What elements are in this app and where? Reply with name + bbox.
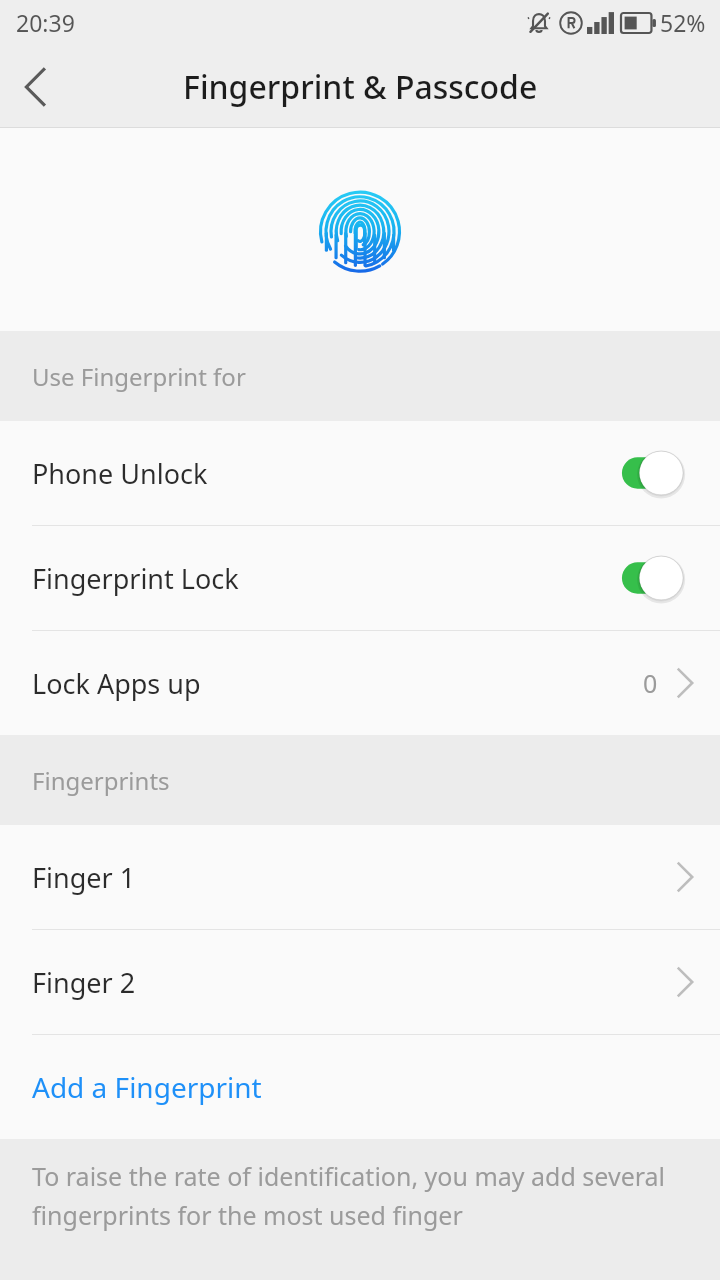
staticText: 52%	[660, 7, 706, 38]
staticText: Fingerprint Lock	[32, 560, 588, 597]
staticText: Phone Unlock	[32, 455, 588, 492]
button[interactable]: Phone Unlock	[0, 421, 720, 525]
staticText: To raise the rate of identification, you…	[32, 1159, 666, 1233]
staticText: Lock Apps up	[32, 665, 643, 702]
button[interactable]	[588, 445, 684, 501]
button[interactable]: Finger 2	[0, 930, 720, 1034]
button[interactable]: Back	[0, 45, 72, 128]
staticText: Finger 2	[32, 964, 676, 1001]
button[interactable]: Lock Apps up	[0, 631, 720, 735]
button[interactable]: Finger 1	[0, 825, 720, 929]
staticText: Use Fingerprint for	[32, 360, 246, 393]
staticText: 0	[643, 666, 658, 700]
staticText: Fingerprints	[32, 764, 170, 797]
staticText: Add a Fingerprint	[32, 1068, 262, 1106]
button[interactable]: Fingerprint Lock	[0, 526, 720, 630]
staticText: Finger 1	[32, 859, 676, 896]
button[interactable]	[588, 550, 684, 606]
staticText: Fingerprint & Passcode	[183, 65, 538, 109]
staticText: 20:39	[16, 7, 75, 38]
button[interactable]: Add a Fingerprint	[0, 1035, 720, 1139]
